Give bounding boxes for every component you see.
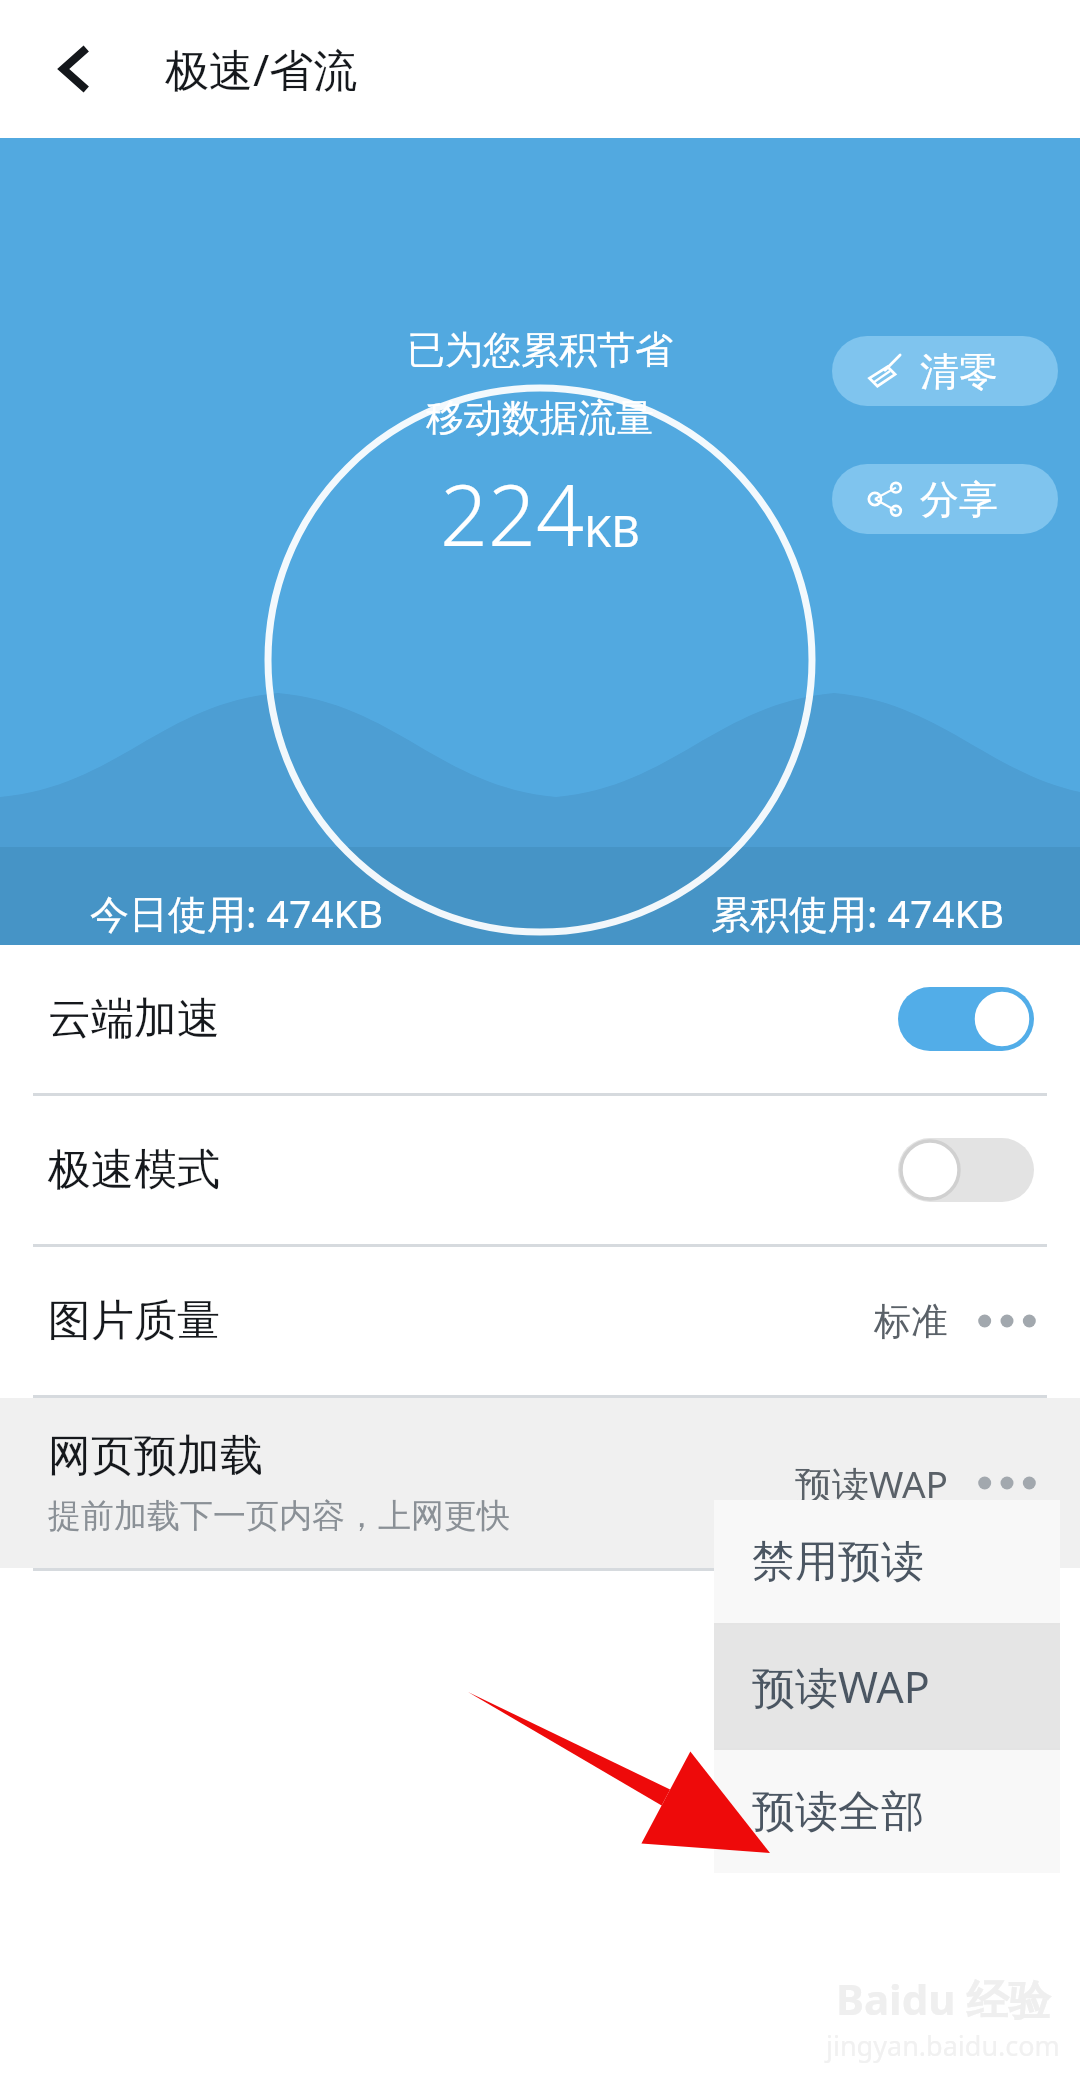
staticText: 极速模式 xyxy=(48,1143,220,1197)
staticText: 云端加速 xyxy=(48,992,220,1046)
button[interactable]: 预读全部 xyxy=(714,1750,1060,1873)
button[interactable]: More options xyxy=(976,1459,1038,1507)
staticText: 极速/省流 xyxy=(165,39,358,99)
button[interactable]: 分享 xyxy=(832,464,1058,534)
button[interactable]: 清零 xyxy=(832,336,1058,406)
staticText: 分享 xyxy=(920,475,998,524)
button[interactable]: Back xyxy=(44,37,108,101)
staticText: 移动数据流量 xyxy=(426,394,654,442)
staticText: 提前加载下一页内容，上网更快 xyxy=(48,1495,510,1537)
staticText: jingyan.baidu.com xyxy=(826,2027,1060,2064)
staticText: KB xyxy=(584,500,640,560)
button[interactable]: Enabled xyxy=(898,987,1034,1051)
staticText: 累积使用: 474KB xyxy=(711,886,1005,939)
staticText: 已为您累积节省 xyxy=(407,326,673,374)
staticText: Baidu 经验 xyxy=(836,1970,1051,2027)
staticText: 预读WAP xyxy=(752,1657,930,1716)
button[interactable]: 网页预加载 xyxy=(0,1398,1080,1568)
button[interactable]: 极速模式 xyxy=(0,1096,1080,1244)
button[interactable]: 预读WAP xyxy=(714,1625,1060,1748)
button[interactable]: 禁用预读 xyxy=(714,1500,1060,1623)
staticText: 预读WAP xyxy=(795,1458,948,1509)
staticText: 今日使用: 474KB xyxy=(90,886,384,939)
staticText: 预读全部 xyxy=(752,1785,924,1839)
staticText: 网页预加载 xyxy=(48,1429,263,1483)
staticText: 图片质量 xyxy=(48,1294,220,1348)
staticText: 清零 xyxy=(920,347,998,396)
staticText: 禁用预读 xyxy=(752,1535,924,1589)
staticText: 224 xyxy=(440,456,584,570)
staticText: 标准 xyxy=(874,1298,948,1345)
button[interactable]: More options xyxy=(976,1297,1038,1345)
button[interactable]: Disabled xyxy=(898,1138,1034,1202)
button[interactable]: 图片质量 xyxy=(0,1247,1080,1395)
button[interactable]: 云端加速 xyxy=(0,945,1080,1093)
